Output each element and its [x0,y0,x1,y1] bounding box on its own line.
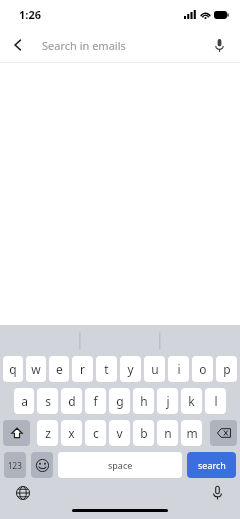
button[interactable]: n [157,420,178,446]
staticText: x [68,425,75,441]
button[interactable]: space [58,452,182,478]
staticText: y [127,361,134,377]
button[interactable]: u [144,356,165,382]
button[interactable]: search [187,452,236,478]
staticText: u [151,361,159,377]
staticText: g [116,393,124,409]
staticText: w [31,361,41,377]
button[interactable]: Voice search [205,31,233,59]
button[interactable]: p [216,356,237,382]
staticText: c [93,425,99,441]
staticText: k [188,393,195,409]
staticText: q [9,361,17,377]
button[interactable]: m [181,420,202,446]
staticText: v [116,425,123,441]
staticText: z [45,425,51,441]
button[interactable]: c [85,420,106,446]
button[interactable]: j [157,388,178,414]
button[interactable]: Back [2,29,34,61]
button[interactable]: r [72,356,93,382]
staticText: s [45,393,51,409]
staticText: b [140,425,148,441]
staticText: a [21,393,28,409]
button[interactable]: Dictate [206,482,228,504]
button[interactable]: h [133,388,154,414]
button[interactable]: d [61,388,82,414]
button[interactable]: x [61,420,82,446]
button[interactable]: Emoji [31,452,53,478]
button[interactable]: l [205,388,226,414]
staticText: j [166,393,170,409]
button[interactable]: Shift [3,420,30,446]
staticText: 1:26 [19,7,41,22]
button[interactable]: b [133,420,154,446]
button[interactable]: s [37,388,58,414]
button[interactable]: i [168,356,189,382]
staticText: o [199,361,207,377]
button[interactable]: a [14,388,34,414]
button[interactable]: g [109,388,130,414]
staticText: r [80,361,85,377]
staticText: l [214,393,218,409]
staticText: space [108,459,133,471]
button[interactable]: q [3,356,23,382]
button[interactable]: Change keyboard [12,482,34,504]
staticText: search [198,459,226,471]
button[interactable]: w [26,356,46,382]
staticText: f [93,393,98,409]
staticText: 123 [8,460,22,471]
button[interactable]: y [120,356,141,382]
button[interactable]: Backspace [210,420,237,446]
button[interactable]: 123 [4,452,26,478]
button[interactable]: z [37,420,58,446]
staticText: m [186,425,198,441]
staticText: n [164,425,172,441]
button[interactable]: k [181,388,202,414]
button[interactable]: t [96,356,117,382]
staticText: h [140,393,148,409]
staticText: e [56,361,63,377]
staticText: t [104,361,109,377]
staticText: Search in emails [42,38,126,53]
button[interactable]: f [85,388,106,414]
button[interactable]: e [49,356,69,382]
staticText: i [177,361,181,377]
staticText: p [223,361,231,377]
staticText: d [68,393,76,409]
button[interactable]: o [192,356,213,382]
button[interactable]: v [109,420,130,446]
